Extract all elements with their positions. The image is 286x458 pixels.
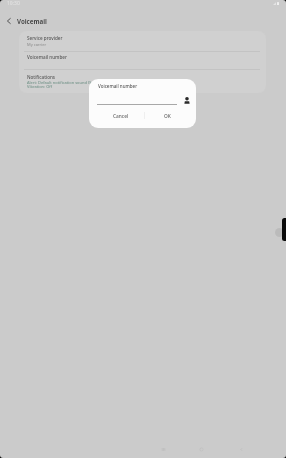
staticText: Alert: Default notification sound (Space…	[27, 80, 109, 89]
button[interactable]: Notifications	[19, 69, 266, 93]
button[interactable]: Voicemail number	[19, 51, 266, 70]
staticText: Voicemail number	[27, 54, 67, 60]
button[interactable]: Service provider	[19, 31, 266, 51]
staticText: Notifications	[27, 74, 56, 80]
button[interactable]: Cancel	[97, 109, 145, 124]
button[interactable]: Edge panel handle	[282, 218, 286, 241]
staticText: Service provider	[27, 35, 63, 41]
button[interactable]: OK	[145, 109, 189, 124]
staticText: Voicemail	[17, 17, 47, 25]
staticText: 10:30	[7, 0, 20, 7]
button[interactable]: Select contact	[184, 97, 190, 104]
staticText: Voicemail number	[98, 83, 138, 89]
button[interactable]: Navigate up	[0, 12, 17, 30]
staticText: My carrier	[27, 42, 47, 47]
staticText: Cancel	[113, 113, 129, 120]
staticText: OK	[164, 113, 171, 120]
